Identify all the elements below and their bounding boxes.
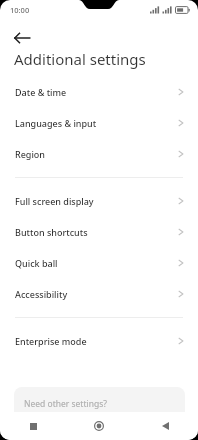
staticText: Button shortcuts	[15, 226, 178, 238]
staticText: Quick ball	[15, 257, 178, 269]
button[interactable]: Quick ball	[0, 247, 198, 278]
button[interactable]: Enterprise mode	[0, 325, 198, 356]
button[interactable]: Button shortcuts	[0, 216, 198, 247]
staticText: Date & time	[15, 86, 178, 98]
staticText: Languages & input	[15, 117, 178, 129]
staticText: Accessibility	[15, 288, 178, 300]
button[interactable]: Home	[66, 412, 132, 440]
staticText: Enterprise mode	[15, 335, 178, 347]
button[interactable]: Languages & input	[0, 107, 198, 138]
staticText: Additional settings	[14, 49, 146, 69]
button[interactable]: Need other settings?	[14, 387, 185, 427]
staticText: Region	[15, 148, 178, 160]
button[interactable]: Back	[6, 22, 38, 54]
staticText: 10:00	[10, 5, 30, 15]
button[interactable]: Date & time	[0, 76, 198, 107]
staticText: Full screen display	[15, 195, 178, 207]
button[interactable]: Back	[132, 412, 198, 440]
staticText: Need other settings?	[24, 398, 107, 410]
button[interactable]: Accessibility	[0, 278, 198, 309]
button[interactable]: Recent apps	[0, 412, 66, 440]
button[interactable]: Full screen display	[0, 185, 198, 216]
button[interactable]: Region	[0, 138, 198, 169]
